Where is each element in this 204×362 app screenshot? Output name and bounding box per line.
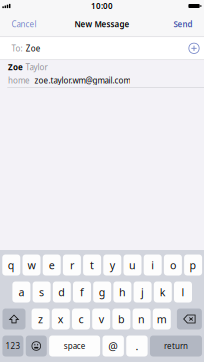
- staticText: Zoe: [8, 62, 23, 72]
- button[interactable]: Delete: [177, 308, 202, 329]
- staticText: To:: [11, 43, 22, 54]
- button[interactable]: u: [123, 254, 141, 275]
- staticText: e: [49, 258, 55, 272]
- button[interactable]: @: [102, 335, 124, 356]
- button[interactable]: h: [113, 281, 131, 302]
- button[interactable]: f: [73, 281, 91, 302]
- button[interactable]: Emoji: [26, 335, 47, 356]
- button[interactable]: s: [33, 281, 51, 302]
- staticText: x: [58, 312, 64, 326]
- button[interactable]: g: [93, 281, 111, 302]
- staticText: t: [90, 258, 94, 272]
- button[interactable]: Send: [168, 12, 197, 36]
- staticText: home: [8, 75, 30, 86]
- button[interactable]: d: [53, 281, 71, 302]
- staticText: d: [58, 285, 65, 299]
- staticText: i: [151, 258, 154, 272]
- staticText: f: [80, 285, 84, 299]
- staticText: Cancel: [11, 19, 36, 29]
- button[interactable]: n: [133, 308, 151, 329]
- staticText: Send: [173, 19, 192, 29]
- staticText: j: [141, 285, 144, 299]
- button[interactable]: a: [12, 281, 30, 302]
- button[interactable]: q: [2, 254, 20, 275]
- staticText: return: [164, 341, 188, 351]
- staticText: m: [157, 312, 167, 326]
- button[interactable]: space: [49, 335, 100, 356]
- staticText: 10:00: [91, 1, 113, 11]
- button[interactable]: Shift: [2, 308, 25, 329]
- staticText: k: [160, 285, 166, 299]
- button[interactable]: l: [174, 281, 192, 302]
- staticText: c: [78, 312, 83, 326]
- button[interactable]: v: [92, 308, 110, 329]
- staticText: o: [170, 258, 176, 272]
- button[interactable]: k: [154, 281, 172, 302]
- staticText: p: [190, 258, 197, 272]
- button[interactable]: Add contact: [188, 42, 200, 54]
- button[interactable]: p: [184, 254, 202, 275]
- staticText: .: [135, 339, 138, 353]
- staticText: q: [8, 258, 15, 272]
- staticText: s: [39, 285, 44, 299]
- button[interactable]: x: [52, 308, 70, 329]
- staticText: h: [119, 285, 126, 299]
- staticText: New Message: [74, 19, 129, 29]
- button[interactable]: Zoe: [0, 60, 204, 87]
- button[interactable]: m: [153, 308, 171, 329]
- button[interactable]: b: [112, 308, 130, 329]
- button[interactable]: y: [103, 254, 121, 275]
- staticText: w: [27, 258, 35, 272]
- staticText: Taylor: [26, 62, 48, 72]
- staticText: v: [99, 312, 104, 326]
- staticText: y: [110, 258, 115, 272]
- staticText: Zoe: [26, 43, 41, 54]
- button[interactable]: c: [72, 308, 90, 329]
- staticText: u: [129, 258, 136, 272]
- button[interactable]: e: [43, 254, 61, 275]
- staticText: z: [38, 312, 43, 326]
- button[interactable]: return: [150, 335, 202, 356]
- staticText: @: [108, 339, 118, 353]
- staticText: g: [99, 285, 106, 299]
- button[interactable]: Cancel: [6, 12, 41, 36]
- button[interactable]: j: [134, 281, 152, 302]
- button[interactable]: t: [83, 254, 101, 275]
- staticText: r: [70, 258, 74, 272]
- staticText: l: [181, 285, 184, 299]
- staticText: zoe.taylor.wm@gmail.com: [34, 75, 130, 86]
- button[interactable]: w: [22, 254, 40, 275]
- button[interactable]: z: [32, 308, 50, 329]
- staticText: a: [18, 285, 24, 299]
- button[interactable]: .: [126, 335, 148, 356]
- staticText: b: [118, 312, 125, 326]
- button[interactable]: r: [63, 254, 81, 275]
- button[interactable]: o: [164, 254, 182, 275]
- staticText: 123: [5, 341, 20, 351]
- button[interactable]: 123: [2, 335, 23, 356]
- button[interactable]: i: [144, 254, 162, 275]
- staticText: space: [64, 341, 86, 351]
- staticText: n: [138, 312, 145, 326]
